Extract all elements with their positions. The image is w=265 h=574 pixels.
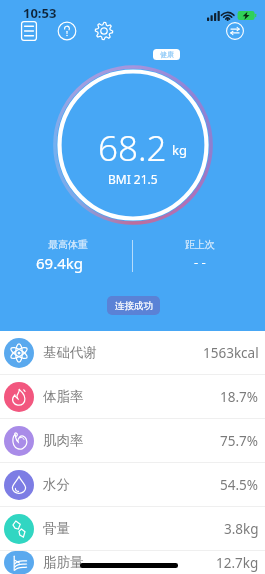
- staticText: 基础代谢: [43, 344, 97, 361]
- button[interactable]: Help: [53, 17, 81, 45]
- staticText: 1563kcal: [203, 344, 259, 362]
- button[interactable]: Settings: [90, 17, 118, 45]
- button[interactable]: 连接成功: [107, 296, 160, 315]
- staticText: BMI 21.5: [108, 171, 158, 187]
- button[interactable]: Switch unit: [221, 17, 249, 45]
- button[interactable]: 水分: [0, 463, 265, 506]
- staticText: 水分: [43, 476, 70, 493]
- staticText: 脂肪量: [43, 554, 84, 571]
- button[interactable]: 骨量: [0, 507, 265, 550]
- staticText: 最高体重: [48, 238, 88, 251]
- staticText: 连接成功: [115, 300, 153, 312]
- button[interactable]: 基础代谢: [0, 331, 265, 374]
- staticText: 54.5%: [220, 476, 259, 494]
- staticText: 距上次: [185, 238, 215, 251]
- staticText: 69.4kg: [36, 253, 83, 273]
- button[interactable]: 健康: [153, 49, 180, 60]
- staticText: 肌肉率: [43, 432, 84, 449]
- staticText: - -: [194, 253, 206, 271]
- staticText: 10:53: [23, 4, 57, 22]
- staticText: 68.2: [98, 124, 167, 172]
- staticText: 12.7kg: [216, 554, 259, 572]
- button[interactable]: 体脂率: [0, 375, 265, 418]
- staticText: 健康: [160, 50, 174, 59]
- staticText: 体脂率: [43, 388, 84, 405]
- staticText: 75.7%: [220, 432, 259, 450]
- staticText: 3.8kg: [224, 520, 259, 538]
- staticText: kg: [172, 141, 187, 159]
- staticText: 18.7%: [220, 388, 259, 406]
- button[interactable]: 脂肪量: [0, 551, 265, 574]
- button[interactable]: 肌肉率: [0, 419, 265, 462]
- staticText: 骨量: [43, 520, 70, 537]
- button[interactable]: Records: [15, 17, 43, 45]
